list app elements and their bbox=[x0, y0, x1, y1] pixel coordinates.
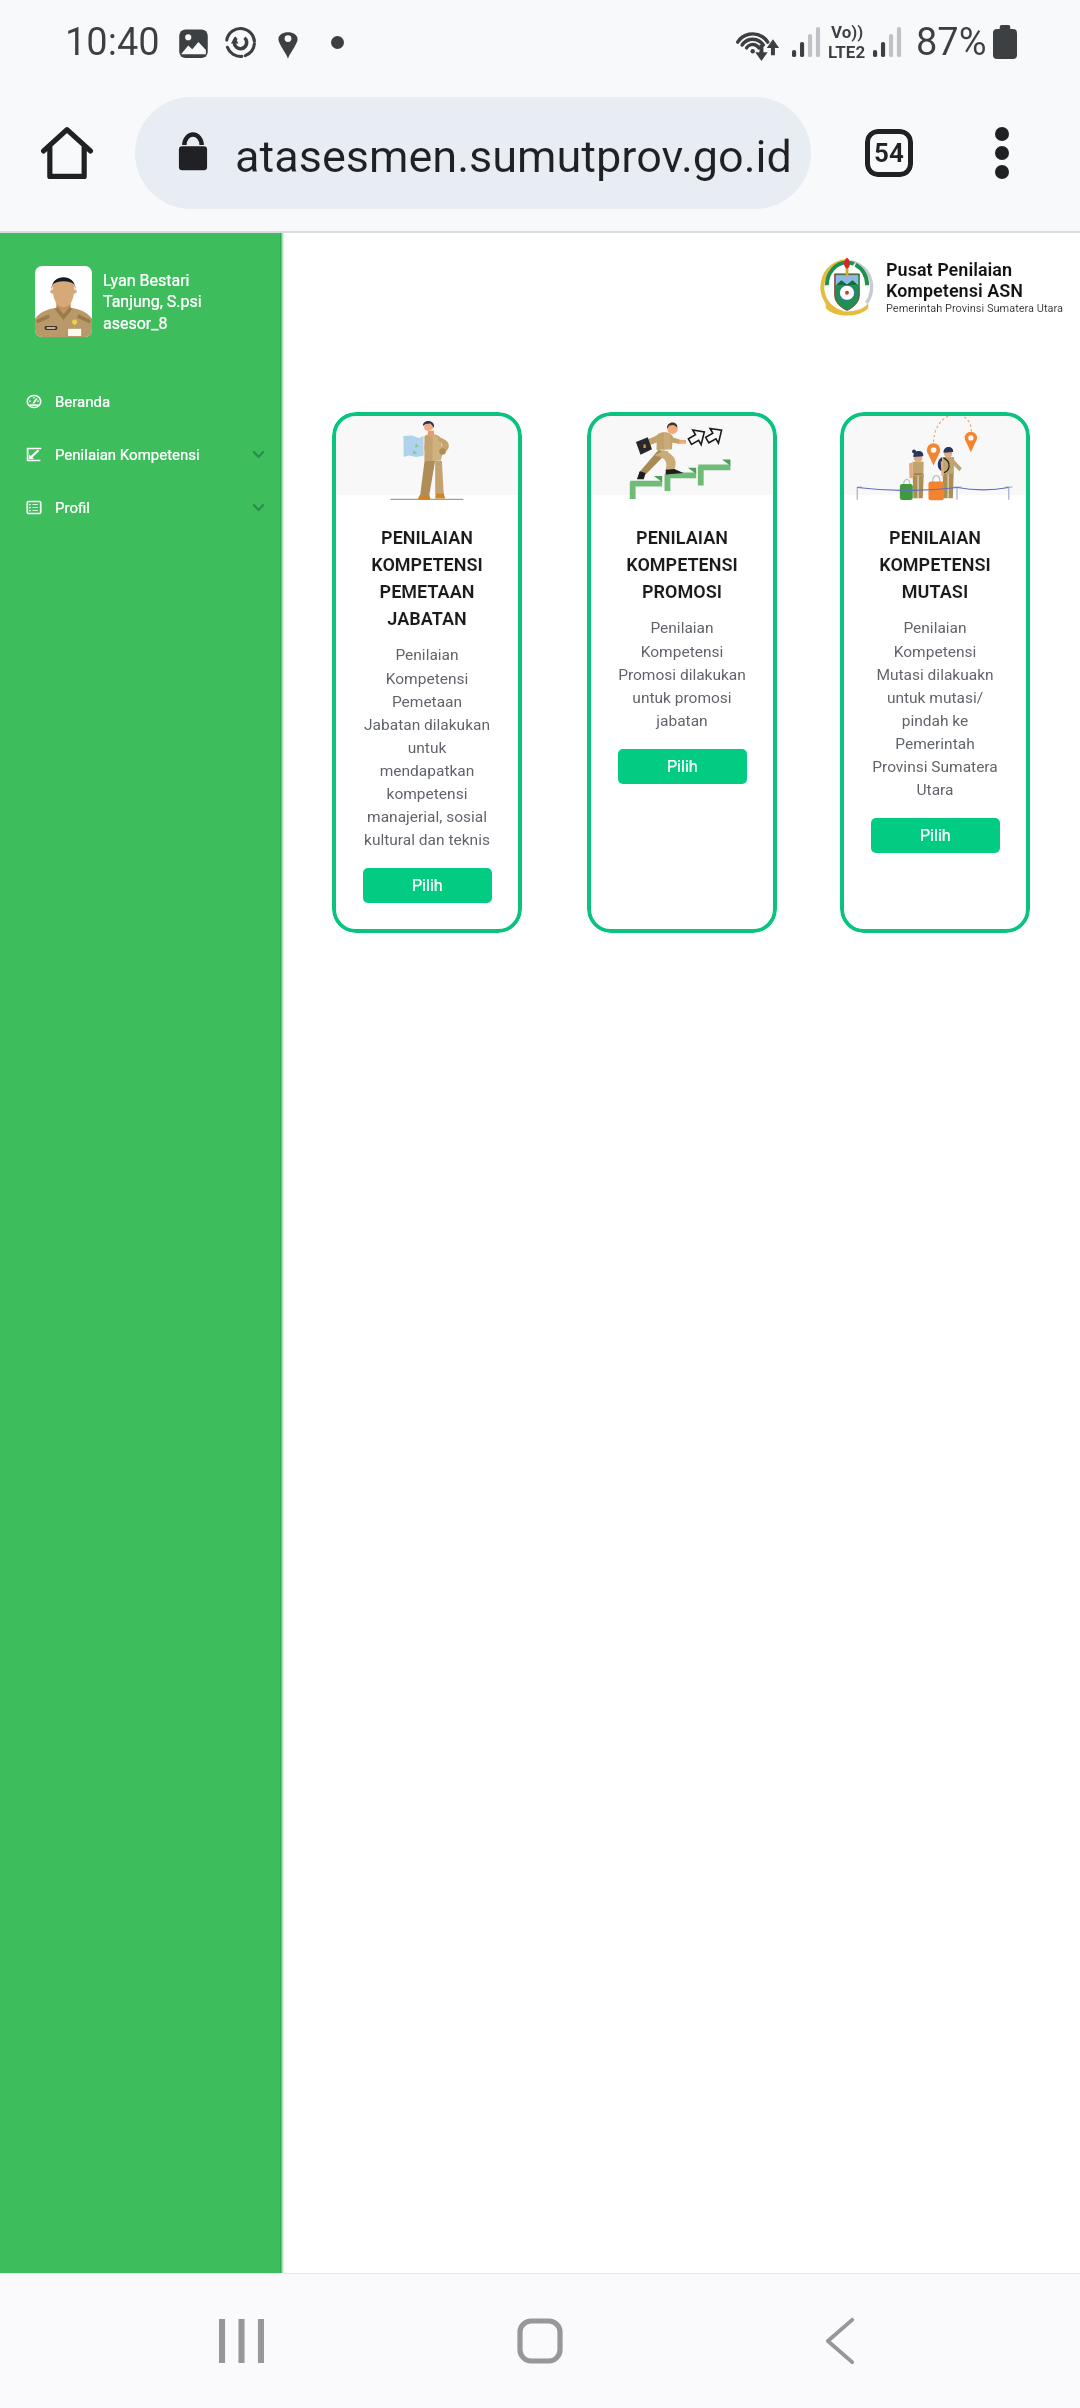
button[interactable]: Pilih bbox=[871, 818, 1000, 853]
button[interactable]: Profil bbox=[0, 481, 284, 534]
button[interactable]: Recents bbox=[186, 2286, 296, 2396]
staticText: Pilih bbox=[667, 757, 698, 776]
button[interactable]: atasesmen.sumutprov.go.id bbox=[135, 97, 811, 209]
button[interactable]: Pilih bbox=[618, 749, 747, 784]
staticText: Pilih bbox=[920, 826, 951, 845]
staticText: Pilih bbox=[412, 876, 443, 895]
staticText: 87% bbox=[916, 20, 987, 65]
button[interactable]: Home bbox=[485, 2286, 595, 2396]
staticText: Vo)) bbox=[831, 22, 864, 42]
staticText: atasesmen.sumutprov.go.id bbox=[235, 130, 792, 183]
button[interactable]: More options bbox=[966, 117, 1038, 189]
staticText: PENILAIAN KOMPETENSI PEMETAAN JABATAN bbox=[338, 527, 516, 629]
staticText: Pemerintah Provinsi Sumatera Utara bbox=[886, 302, 1064, 315]
staticText: Pusat Penilaian Kompetensi ASN bbox=[886, 259, 1024, 301]
staticText: 54 bbox=[874, 138, 904, 168]
staticText: Penilaian Kompetensi Pemetaan Jabatan di… bbox=[362, 646, 492, 848]
staticText: PENILAIAN KOMPETENSI PROMOSI bbox=[593, 527, 771, 602]
staticText: PENILAIAN KOMPETENSI MUTASI bbox=[846, 527, 1024, 602]
button[interactable]: Tabs bbox=[853, 117, 925, 189]
button[interactable]: Back bbox=[785, 2286, 895, 2396]
button[interactable]: Pilih bbox=[363, 868, 492, 903]
staticText: Lyan Bestari Tanjung, S.psi asesor_8 bbox=[103, 271, 202, 333]
button[interactable]: Home bbox=[24, 110, 110, 196]
staticText: Penilaian Kompetensi bbox=[55, 446, 200, 464]
staticText: 10:40 bbox=[65, 20, 160, 65]
staticText: Penilaian Kompetensi Promosi dilakukan u… bbox=[617, 619, 747, 729]
staticText: Beranda bbox=[55, 393, 111, 411]
button[interactable]: Beranda bbox=[0, 375, 284, 428]
staticText: Penilaian Kompetensi Mutasi dilakuakn un… bbox=[870, 619, 1000, 798]
button[interactable]: Penilaian Kompetensi bbox=[0, 428, 284, 481]
staticText: LTE2 bbox=[828, 42, 866, 62]
staticText: Profil bbox=[55, 499, 90, 517]
